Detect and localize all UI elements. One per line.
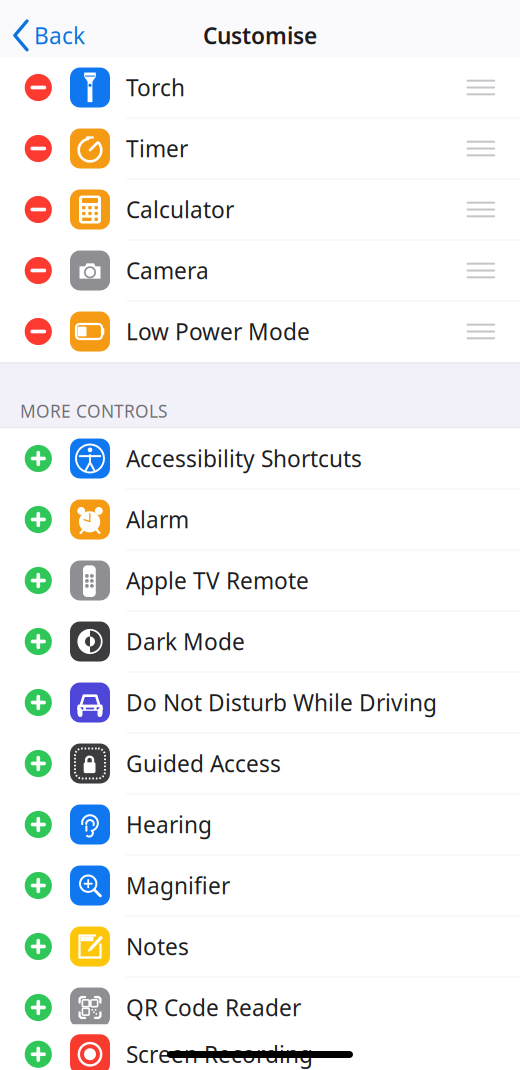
button[interactable]: Back [0, 10, 93, 60]
button[interactable]: Guided Access [0, 733, 520, 793]
button[interactable]: Low Power Mode [0, 301, 520, 361]
button[interactable]: Camera [0, 240, 520, 300]
staticText: Torch [126, 72, 185, 102]
button[interactable]: Magnifier [0, 855, 520, 915]
staticText: MORE CONTROLS [20, 399, 168, 422]
staticText: QR Code Reader [126, 992, 301, 1022]
staticText: Magnifier [126, 870, 230, 900]
staticText: Alarm [126, 504, 189, 534]
button[interactable]: Accessibility Shortcuts [0, 428, 520, 488]
button[interactable]: Notes [0, 916, 520, 976]
staticText: Apple TV Remote [126, 565, 309, 595]
button[interactable]: Alarm [0, 489, 520, 549]
button[interactable]: Torch [0, 57, 520, 117]
staticText: Low Power Mode [126, 316, 310, 346]
staticText: Back [34, 20, 85, 50]
staticText: Dark Mode [126, 626, 245, 656]
button[interactable]: Hearing [0, 794, 520, 854]
button[interactable]: Do Not Disturb While Driving [0, 672, 520, 732]
staticText: Camera [126, 255, 209, 285]
button[interactable]: Dark Mode [0, 611, 520, 671]
button[interactable]: QR Code Reader [0, 977, 520, 1037]
staticText: Guided Access [126, 748, 281, 778]
button[interactable]: Calculator [0, 179, 520, 239]
staticText: Notes [126, 931, 189, 961]
staticText: Calculator [126, 194, 234, 224]
button[interactable]: Screen Recording [0, 1024, 520, 1070]
staticText: Screen Recording [126, 1039, 313, 1069]
staticText: Timer [126, 133, 188, 163]
button[interactable]: Apple TV Remote [0, 550, 520, 610]
staticText: Accessibility Shortcuts [126, 443, 362, 473]
staticText: Hearing [126, 809, 212, 839]
staticText: Customise [203, 20, 317, 50]
button[interactable]: Timer [0, 118, 520, 178]
staticText: Do Not Disturb While Driving [126, 687, 437, 717]
